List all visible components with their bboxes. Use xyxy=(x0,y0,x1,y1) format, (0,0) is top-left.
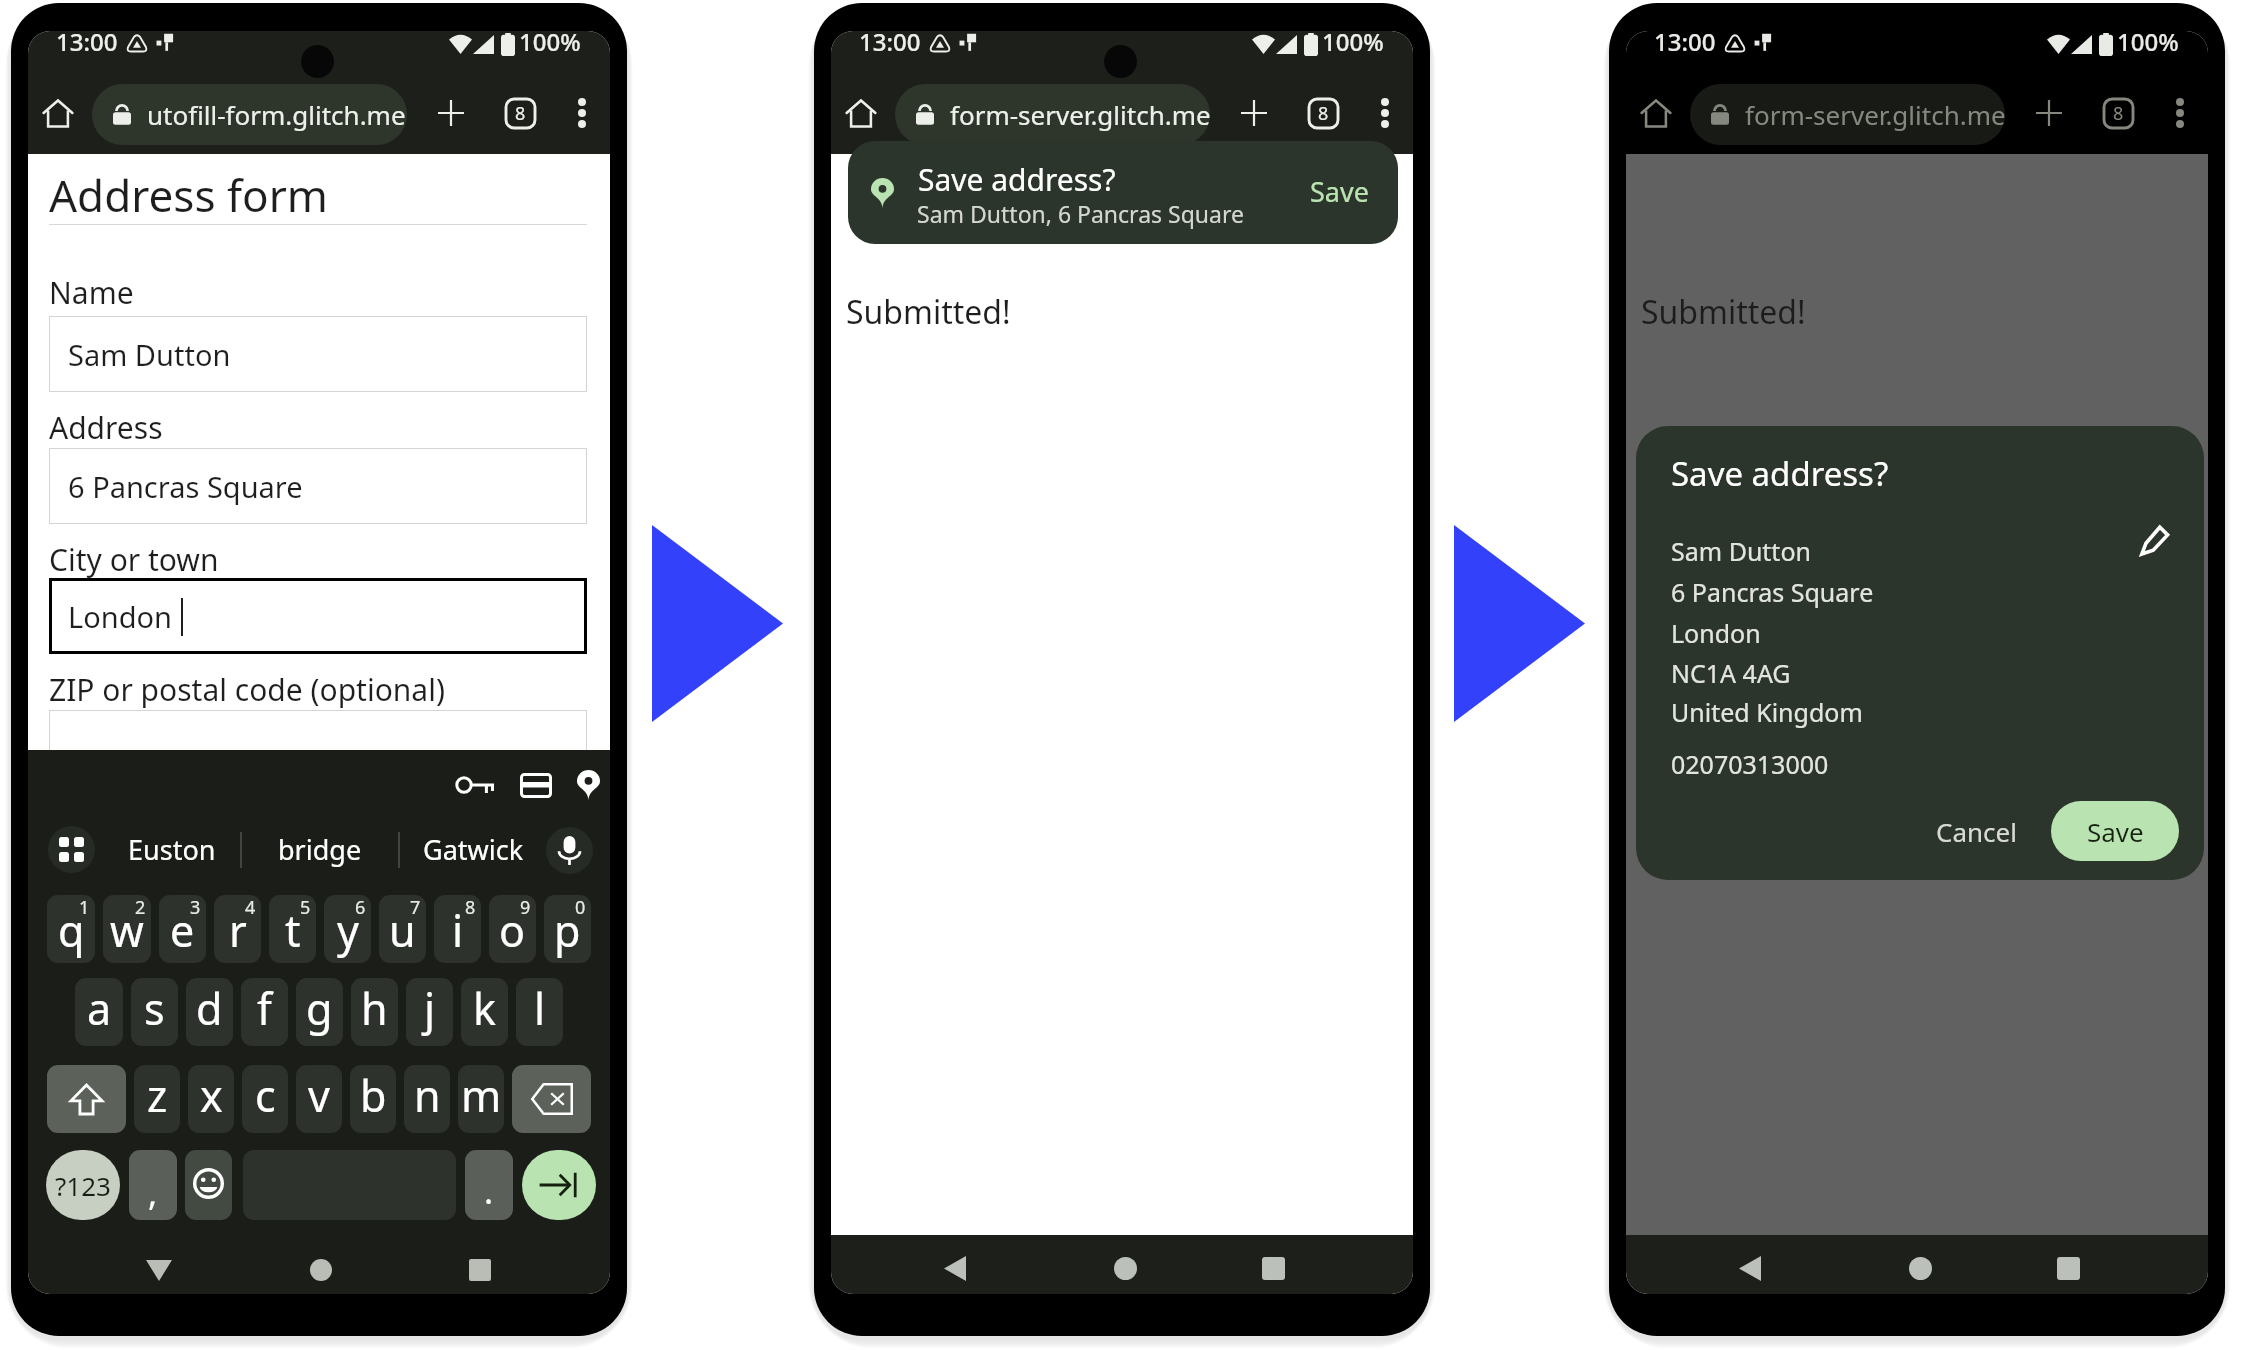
button[interactable]: s xyxy=(131,978,178,1046)
button[interactable]: b xyxy=(350,1065,396,1133)
button[interactable]: r xyxy=(214,895,261,963)
button[interactable]: Home xyxy=(1104,1247,1146,1289)
staticText: o xyxy=(499,901,526,960)
button[interactable]: Payment methods xyxy=(511,764,561,806)
button[interactable]: 6 Pancras Square xyxy=(49,448,587,524)
staticText: c xyxy=(255,1066,276,1125)
button[interactable]: t xyxy=(269,895,316,963)
staticText: Sam Dutton xyxy=(68,335,231,374)
button[interactable]: Gatwick xyxy=(400,826,546,873)
button[interactable]: g xyxy=(296,978,343,1046)
button[interactable]: Home xyxy=(840,92,882,134)
button[interactable]: Recents xyxy=(459,1249,501,1291)
button[interactable]: u xyxy=(379,895,426,963)
button[interactable] xyxy=(49,710,587,786)
staticText: Save xyxy=(2087,814,2144,849)
button[interactable]: Addresses xyxy=(568,762,608,808)
button[interactable]: y xyxy=(324,895,371,963)
button[interactable]: Recents xyxy=(1252,1247,1294,1289)
staticText: 100% xyxy=(2117,31,2179,58)
button[interactable]: l xyxy=(516,978,563,1046)
button[interactable]: o xyxy=(489,895,536,963)
button[interactable]: Save address? xyxy=(848,141,1398,244)
staticText: 13:00 xyxy=(1654,31,1716,58)
button[interactable]: d xyxy=(186,978,233,1046)
button[interactable]: More options xyxy=(1365,93,1405,133)
button[interactable]: j xyxy=(406,978,453,1046)
button[interactable]: i xyxy=(434,895,481,963)
button[interactable]: Toolbar xyxy=(48,826,95,873)
button[interactable]: More options xyxy=(562,93,602,133)
button[interactable]: Shift xyxy=(47,1065,126,1133)
button[interactable]: q xyxy=(47,895,95,963)
button[interactable]: . xyxy=(465,1150,513,1220)
button[interactable]: Next xyxy=(522,1150,596,1220)
staticText: Submitted! xyxy=(846,290,1011,334)
button[interactable]: Back xyxy=(934,1247,976,1289)
button[interactable]: Euston xyxy=(103,826,240,873)
button[interactable]: More options xyxy=(2160,93,2200,133)
button[interactable]: London xyxy=(49,578,587,654)
button[interactable]: Edit xyxy=(2129,514,2181,566)
staticText: Gatwick xyxy=(423,831,524,868)
staticText: 6 Pancras Square xyxy=(1671,575,1874,609)
staticText: . xyxy=(484,1168,494,1214)
button[interactable]: v xyxy=(296,1065,342,1133)
button[interactable]: Sam Dutton xyxy=(49,316,587,392)
button[interactable]: a xyxy=(75,978,123,1046)
button[interactable]: f xyxy=(241,978,288,1046)
button[interactable]: Home xyxy=(1899,1247,1941,1289)
button[interactable]: New tab xyxy=(2029,93,2069,133)
button[interactable]: p xyxy=(544,895,591,963)
button[interactable]: m xyxy=(458,1065,504,1133)
staticText: 100% xyxy=(519,31,581,58)
button[interactable]: form-server.glitch.me xyxy=(895,84,1210,145)
button[interactable]: Passwords xyxy=(447,766,503,804)
button[interactable]: utofill-form.glitch.me xyxy=(92,84,407,145)
button[interactable]: Voice input xyxy=(546,827,593,874)
button[interactable]: z xyxy=(134,1065,180,1133)
staticText: City or town xyxy=(49,539,219,580)
button[interactable]: form-server.glitch.me xyxy=(1690,84,2005,145)
button[interactable]: Tabs xyxy=(2100,95,2137,132)
staticText: e xyxy=(170,901,195,960)
staticText: 6 Pancras Square xyxy=(68,467,303,506)
staticText: Save xyxy=(1310,173,1369,210)
button[interactable]: Home xyxy=(300,1249,342,1291)
button[interactable]: Recents xyxy=(2047,1247,2089,1289)
button[interactable]: Save xyxy=(2051,801,2179,861)
staticText: f xyxy=(257,979,272,1038)
button[interactable]: Tabs xyxy=(1305,95,1342,132)
staticText: 8 xyxy=(2113,101,2124,126)
button[interactable]: ?123 xyxy=(46,1150,120,1220)
staticText: Save address? xyxy=(918,159,1116,200)
button[interactable]: bridge xyxy=(242,826,398,873)
staticText: utofill-form.glitch.me xyxy=(147,97,406,132)
button[interactable]: n xyxy=(404,1065,450,1133)
button[interactable]: Tabs xyxy=(502,95,539,132)
button[interactable]: c xyxy=(242,1065,288,1133)
button[interactable]: h xyxy=(351,978,398,1046)
button[interactable]: Home xyxy=(37,92,79,134)
button[interactable]: Back xyxy=(1729,1247,1771,1289)
staticText: l xyxy=(534,979,546,1038)
button[interactable]: Cancel xyxy=(1924,801,2028,861)
staticText: 8 xyxy=(465,895,476,920)
button[interactable]: k xyxy=(461,978,508,1046)
button[interactable]: Backspace xyxy=(512,1065,591,1133)
button[interactable]: Hide keyboard xyxy=(138,1249,180,1291)
staticText: a xyxy=(87,979,112,1038)
button[interactable]: x xyxy=(188,1065,234,1133)
button[interactable]: Home xyxy=(1635,92,1677,134)
staticText: 0 xyxy=(575,895,586,920)
staticText: h xyxy=(361,979,388,1038)
button[interactable]: w xyxy=(103,895,151,963)
button[interactable]: New tab xyxy=(431,93,471,133)
button[interactable]: Emoji xyxy=(185,1150,232,1220)
button[interactable]: e xyxy=(159,895,206,963)
staticText: i xyxy=(452,901,464,960)
button[interactable]: New tab xyxy=(1234,93,1274,133)
staticText: 4 xyxy=(245,895,256,920)
button[interactable]: , xyxy=(129,1150,177,1220)
